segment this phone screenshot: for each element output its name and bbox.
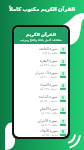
staticText: 4 [62,83,65,88]
staticText: سورة الأنفال [40,128,58,133]
staticText: مدنية - ٢٠٠ آية [40,75,58,79]
staticText: مدنية - ١٢٠ آية [40,99,58,103]
staticText: مصحف كامل بخط واضح ومرتب [20,38,62,42]
staticText: سورة الأنعام [40,106,58,111]
staticText: سورة آل عمران [35,70,58,75]
staticText: سورة النساء [40,82,58,87]
staticText: 7 [62,119,65,124]
staticText: سورة الفاتحة [39,46,58,51]
staticText: مدنية - ٢٨٦ آية [40,63,58,67]
staticText: سورة الأعراف [37,118,58,123]
button[interactable]: سورة الفاتحة [14,44,68,56]
staticText: مكية - ٢٠٦ آية [41,123,58,127]
staticText: سورة المائدة [39,94,58,99]
button[interactable]: سورة الأنفال [14,128,68,137]
staticText: مكية - ١٦٥ آية [41,111,58,115]
staticText: القرآن الكريم [26,31,56,37]
staticText: مدنية - ٧٥ آية [42,133,58,137]
button[interactable]: سورة الأنعام [14,104,68,116]
staticText: مكية - ٧ آيات [42,51,58,55]
staticText: 6 [62,107,65,112]
other: Audio [0,0,84,150]
staticText: 2 [62,59,65,64]
staticText: مدنية - ١٧٦ آية [40,87,58,91]
staticText: 3 [62,71,65,76]
staticText: سورة البقرة [40,58,58,63]
button[interactable]: سورة النساء [14,80,68,92]
staticText: 1 [62,47,65,52]
button[interactable]: سورة الأعراف [14,116,68,128]
button[interactable]: سورة آل عمران [14,68,68,80]
button[interactable]: سورة البقرة [14,56,68,68]
staticText: 5 [62,95,65,100]
button[interactable]: سورة المائدة [14,92,68,104]
staticText: 8 [62,129,65,134]
staticText: القرآن الكريم مكتوب كاملاً [9,5,75,12]
